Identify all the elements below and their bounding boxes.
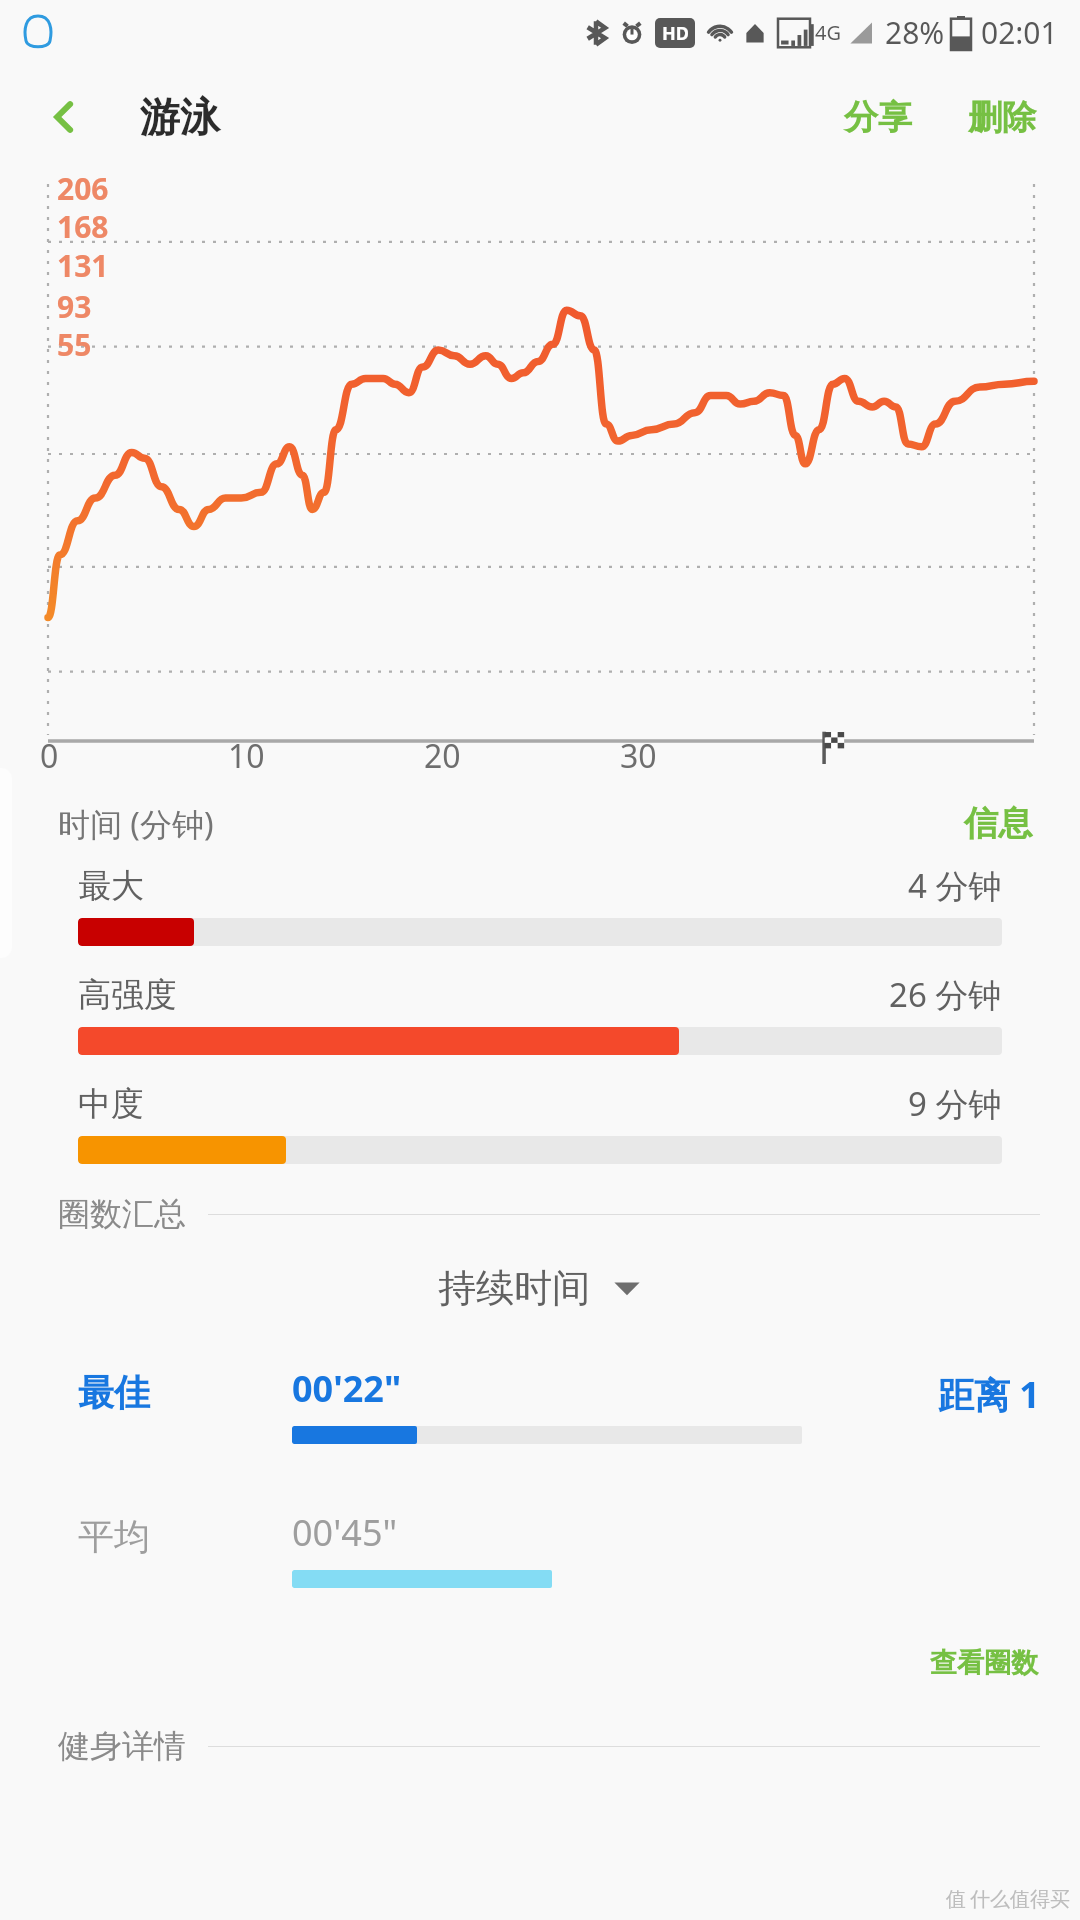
staticText: 查看圈数	[930, 1646, 1038, 1680]
staticText: 9 分钟	[908, 1081, 1002, 1126]
staticText: 0	[40, 734, 59, 778]
button[interactable]: 分享	[830, 86, 926, 149]
staticText: 最大	[78, 865, 144, 907]
staticText: 圈数汇总	[58, 1194, 186, 1234]
staticText: 20	[424, 734, 461, 778]
staticText: 分享	[844, 96, 912, 139]
staticText: 什么值得买	[970, 1887, 1070, 1912]
staticText: 02:01	[981, 12, 1058, 53]
staticText: 168	[57, 206, 109, 247]
staticText: 删除	[968, 96, 1036, 139]
button[interactable]: 持续时间	[422, 1256, 658, 1320]
staticText: 最佳	[78, 1370, 150, 1415]
staticText: HD	[662, 21, 689, 46]
staticText: 00'22"	[292, 1364, 402, 1413]
button[interactable]: 信息	[956, 796, 1040, 851]
staticText: 30	[620, 734, 657, 778]
staticText: 28%	[885, 12, 945, 53]
staticText: 距离 1	[938, 1370, 1040, 1419]
staticText: 55	[57, 324, 92, 365]
staticText: 高强度	[78, 974, 177, 1016]
staticText: 206	[57, 168, 109, 209]
staticText: 26 分钟	[889, 972, 1002, 1017]
staticText: 10	[228, 734, 265, 778]
staticText: 健身详情	[58, 1726, 186, 1766]
staticText: 持续时间	[438, 1264, 590, 1312]
staticText: 平均	[78, 1514, 150, 1559]
staticText: 131	[57, 245, 109, 286]
staticText: 4 分钟	[908, 863, 1002, 908]
button[interactable]: 查看圈数	[922, 1640, 1046, 1686]
staticText: 00'45"	[292, 1508, 398, 1557]
staticText: 时间 (分钟)	[58, 802, 214, 846]
staticText: 93	[57, 286, 92, 327]
staticText: 中度	[78, 1083, 144, 1125]
button[interactable]: 删除	[954, 86, 1050, 149]
staticText: 游泳	[140, 92, 220, 142]
staticText: 值	[946, 1887, 966, 1912]
staticText: 4G	[815, 19, 841, 46]
button[interactable]: 返回	[38, 91, 90, 143]
staticText: 信息	[964, 802, 1032, 845]
